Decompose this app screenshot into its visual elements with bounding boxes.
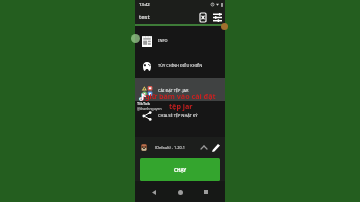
button[interactable]: Recent apps [199,185,213,199]
staticText: CHẠY [174,167,187,173]
staticText: giữ bấm vào cài đặt [145,91,216,101]
staticText: CHIA SẺ TỆP NHẬT KÝ [158,113,198,118]
button[interactable]: Home [173,185,187,199]
staticText: test [139,13,150,21]
button[interactable]: Edit profile [210,142,221,153]
button[interactable]: INFO [135,28,225,53]
staticText: CÀI ĐẶT TỆP .JAR [158,88,189,93]
staticText: TÙY CHỈNH ĐIỀU KHIỂN [158,63,203,68]
button[interactable]: CHẠY [140,158,220,181]
button[interactable]: TÙY CHỈNH ĐIỀU KHIỂN [135,53,225,78]
button[interactable]: Clear text [197,11,209,23]
button[interactable]: Collapse [199,142,209,152]
button[interactable]: Filter options [211,11,223,23]
staticText: @thanhnguyen [137,106,162,111]
staticText: 13:42 [139,2,150,8]
button[interactable]: CÀI ĐẶT TỆP .JAR [135,78,225,103]
button[interactable]: Back [147,185,161,199]
staticText: (Default) - 1.20.1 [155,145,185,150]
staticText: tệp jar [169,101,193,111]
staticText: INFO [158,38,168,43]
button[interactable]: CHIA SẺ TỆP NHẬT KÝ [135,103,225,128]
button[interactable]: (Default) - 1.20.1 [135,137,225,157]
staticText: TikTok [137,101,150,106]
